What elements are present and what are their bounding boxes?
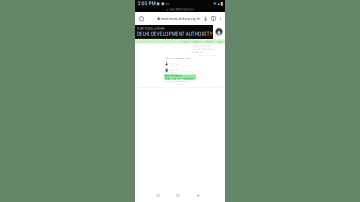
staticText: 3:00 PM [137,0,155,7]
staticText: 01-04-2024 [206,54,216,56]
staticText: ▣ [156,1,160,6]
staticText: ▭ [166,1,170,6]
staticText: ✕ [192,57,194,59]
staticText: Home About Us Services Login [181,40,222,43]
staticText: 4 3 F 6 B [166,73,175,75]
staticText: Ministry of Housing & Urban Affairs, Gov… [137,37,192,40]
staticText: Last updated [191,54,203,56]
staticText: ▴ [218,1,220,6]
staticText: Forgot User ID / Password ? [164,77,194,80]
staticText: • For assistance mail to helpdesk-dda [191,48,216,53]
staticText: Two Notifications [168,7,193,11]
staticText: User ID [169,62,178,65]
staticText: Password [169,68,178,71]
button[interactable]: Back [193,189,203,202]
staticText: DELHI DEVELOPMENT AUTHORITY [137,31,213,37]
staticText: ▣ [161,1,165,6]
staticText: Enter the captcha [164,74,181,77]
staticText: eservices.dda.org.in [161,16,201,21]
staticText: ▮ [220,1,222,6]
button[interactable]: Downloads [201,12,209,25]
staticText: Do not have an account ? [165,80,190,83]
staticText: दिल्ली विकास प्राधिकरण [137,27,165,31]
button[interactable]: Home [173,189,183,202]
button[interactable]: LOGIN [174,83,186,85]
staticText: LOGIN [176,82,184,85]
staticText: ▴ [167,8,168,11]
button[interactable]: Menu [217,12,223,25]
button[interactable]: Tabs [209,12,217,25]
staticText: Log in to the Portal Here [164,56,190,60]
button[interactable]: Home [136,12,146,25]
staticText: • Kindly use Chrome [191,44,211,47]
staticText: ✈ [213,1,217,6]
button[interactable]: Recents [153,189,163,202]
